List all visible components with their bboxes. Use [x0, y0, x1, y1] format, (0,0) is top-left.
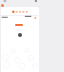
button[interactable]: Continue: [15, 24, 23, 26]
button[interactable]: Logo: [1, 4, 4, 7]
button[interactable]: Profile: [18, 33, 22, 37]
